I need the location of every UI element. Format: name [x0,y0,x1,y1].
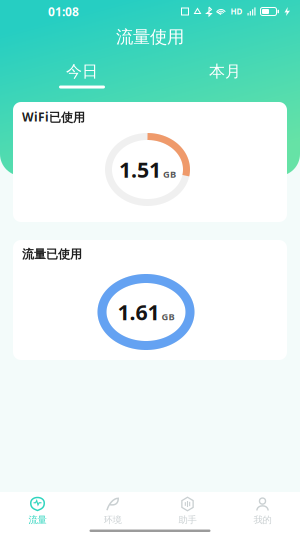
staticText: 环境 [103,514,121,526]
staticText: 本月 [209,62,241,81]
staticText: 我的 [253,514,271,526]
staticText: 01:08 [48,3,79,19]
button[interactable]: 本月 [150,55,300,88]
button[interactable]: 今日 [0,55,150,88]
staticText: 1.51 [119,155,161,184]
staticText: 流量 [28,514,46,526]
button[interactable]: 流量 [0,492,75,538]
button[interactable]: 助手 [150,492,225,538]
staticText: 流量使用 [116,26,184,48]
staticText: GB [163,168,176,180]
button[interactable]: 环境 [75,492,150,538]
staticText: 1.61 [117,298,159,326]
staticText: HD [230,6,242,17]
staticText: 助手 [178,514,196,526]
staticText: WiFi已使用 [22,109,85,125]
staticText: GB [161,310,174,323]
button[interactable]: 我的 [225,492,300,538]
staticText: 流量已使用 [22,247,82,262]
staticText: 今日 [66,62,98,81]
